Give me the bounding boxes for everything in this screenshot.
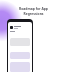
- staticText: Roadmap for App: [19, 6, 48, 11]
- button[interactable]: [10, 26, 30, 29]
- staticText: Regressions: [23, 11, 44, 16]
